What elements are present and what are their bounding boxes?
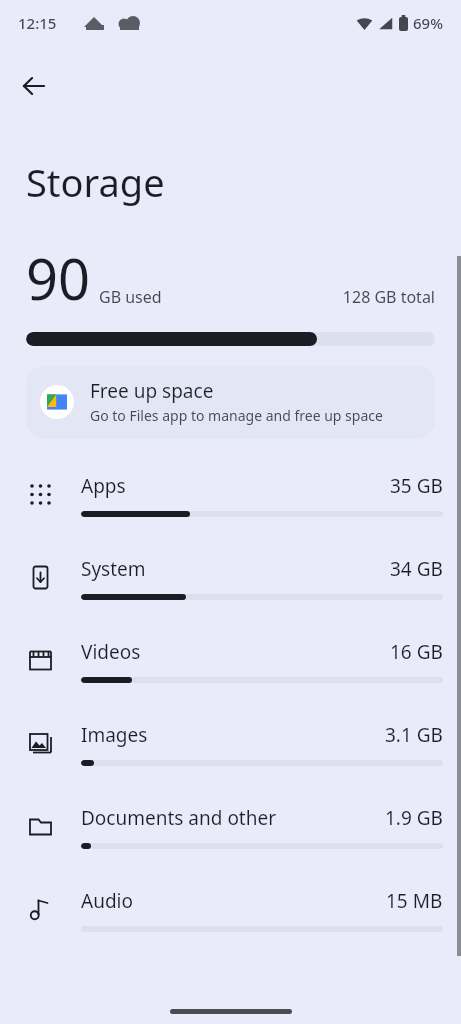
button[interactable]: Back: [10, 62, 58, 110]
staticText: GB used: [99, 286, 162, 308]
staticText: Free up space: [90, 378, 214, 404]
button[interactable]: Documents and other: [0, 785, 461, 868]
button[interactable]: System: [0, 536, 461, 619]
staticText: System: [81, 556, 390, 582]
button[interactable]: Apps: [0, 453, 461, 536]
button[interactable]: Audio: [0, 868, 461, 951]
staticText: 12:15: [18, 13, 57, 33]
staticText: 15 MB: [386, 888, 443, 914]
button[interactable]: Free up space: [26, 366, 435, 439]
staticText: Audio: [81, 888, 386, 914]
staticText: Apps: [81, 473, 390, 499]
staticText: Images: [81, 722, 385, 748]
button[interactable]: Images: [0, 702, 461, 785]
staticText: 90: [26, 240, 91, 316]
staticText: 34 GB: [390, 556, 443, 582]
staticText: 35 GB: [390, 473, 443, 499]
staticText: 16 GB: [390, 639, 443, 665]
staticText: 3.1 GB: [385, 722, 443, 748]
staticText: 1.9 GB: [385, 805, 443, 831]
staticText: Videos: [81, 639, 390, 665]
staticText: Storage: [26, 156, 165, 208]
staticText: Documents and other: [81, 805, 385, 831]
staticText: 69%: [413, 13, 443, 33]
staticText: Go to Files app to manage and free up sp…: [90, 406, 383, 425]
button[interactable]: Videos: [0, 619, 461, 702]
staticText: 128 GB total: [342, 286, 435, 308]
